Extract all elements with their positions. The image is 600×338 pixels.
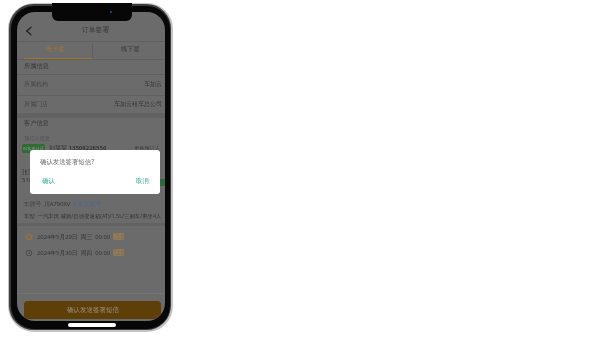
staticText: 所属机构 [24, 80, 48, 88]
button[interactable]: 线下签 [95, 45, 165, 53]
staticText: 川A790XV [44, 200, 71, 208]
staticText: 预订人信息 [24, 135, 50, 142]
staticText: 2024年5月30日 周四 00:00 [37, 249, 111, 257]
staticText: 所属信息 [24, 62, 49, 70]
button[interactable]: 取消 [130, 174, 154, 188]
staticText: 客户信息 [24, 119, 49, 127]
button[interactable] [21, 24, 35, 38]
staticText: 刘某某 13508228556 [49, 144, 107, 152]
staticText: 5103561990 [22, 176, 57, 184]
staticText: 2024年5月29日 周三 00:00 [37, 233, 111, 241]
staticText: 订单签署 [82, 25, 110, 34]
button[interactable]: 更换车牌号 [17, 12, 46, 19]
staticText: 更换预订人 [134, 145, 160, 152]
staticText: 车如云租车总公司 [114, 100, 162, 108]
staticText: 电子签 [46, 45, 65, 53]
staticText: 还车 [114, 250, 123, 256]
staticText: 取消 [136, 177, 149, 185]
staticText: 张某某 [22, 168, 40, 176]
staticText: 所属门店 [24, 100, 48, 108]
staticText: 车型 一汽丰田 威驰/自动变速箱(AT)/1.5L/三厢车/乘坐4人 [24, 212, 162, 219]
staticText: 线下签 [121, 45, 140, 53]
staticText: 车如云 [144, 80, 162, 88]
staticText: 确认发送签署短信? [40, 157, 94, 166]
staticText: 确认发送签署短信 [67, 306, 119, 314]
staticText: 取车 [114, 234, 123, 240]
staticText: 确认 [42, 177, 55, 185]
staticText: 车牌号 [24, 200, 42, 207]
button[interactable]: 确认 [36, 174, 60, 188]
button[interactable]: 确认发送签署短信 [24, 301, 161, 319]
staticText: 已实名认证 [23, 146, 44, 151]
button[interactable]: 电子签 [18, 45, 93, 53]
